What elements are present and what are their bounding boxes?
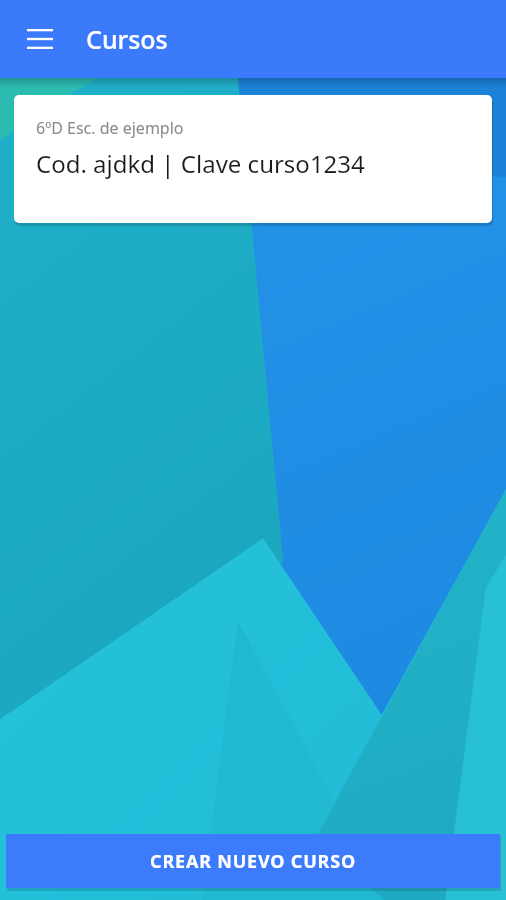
staticText: Cod. ajdkd | Clave curso1234 (36, 147, 365, 180)
button[interactable]: Open navigation drawer (16, 15, 64, 63)
staticText: 6ºD Esc. de ejemplo (36, 117, 184, 139)
staticText: Cursos (86, 22, 168, 56)
staticText: CREAR NUEVO CURSO (150, 849, 356, 874)
button[interactable]: CREAR NUEVO CURSO (6, 834, 500, 888)
button[interactable]: 6ºD Esc. de ejemplo (14, 95, 492, 223)
